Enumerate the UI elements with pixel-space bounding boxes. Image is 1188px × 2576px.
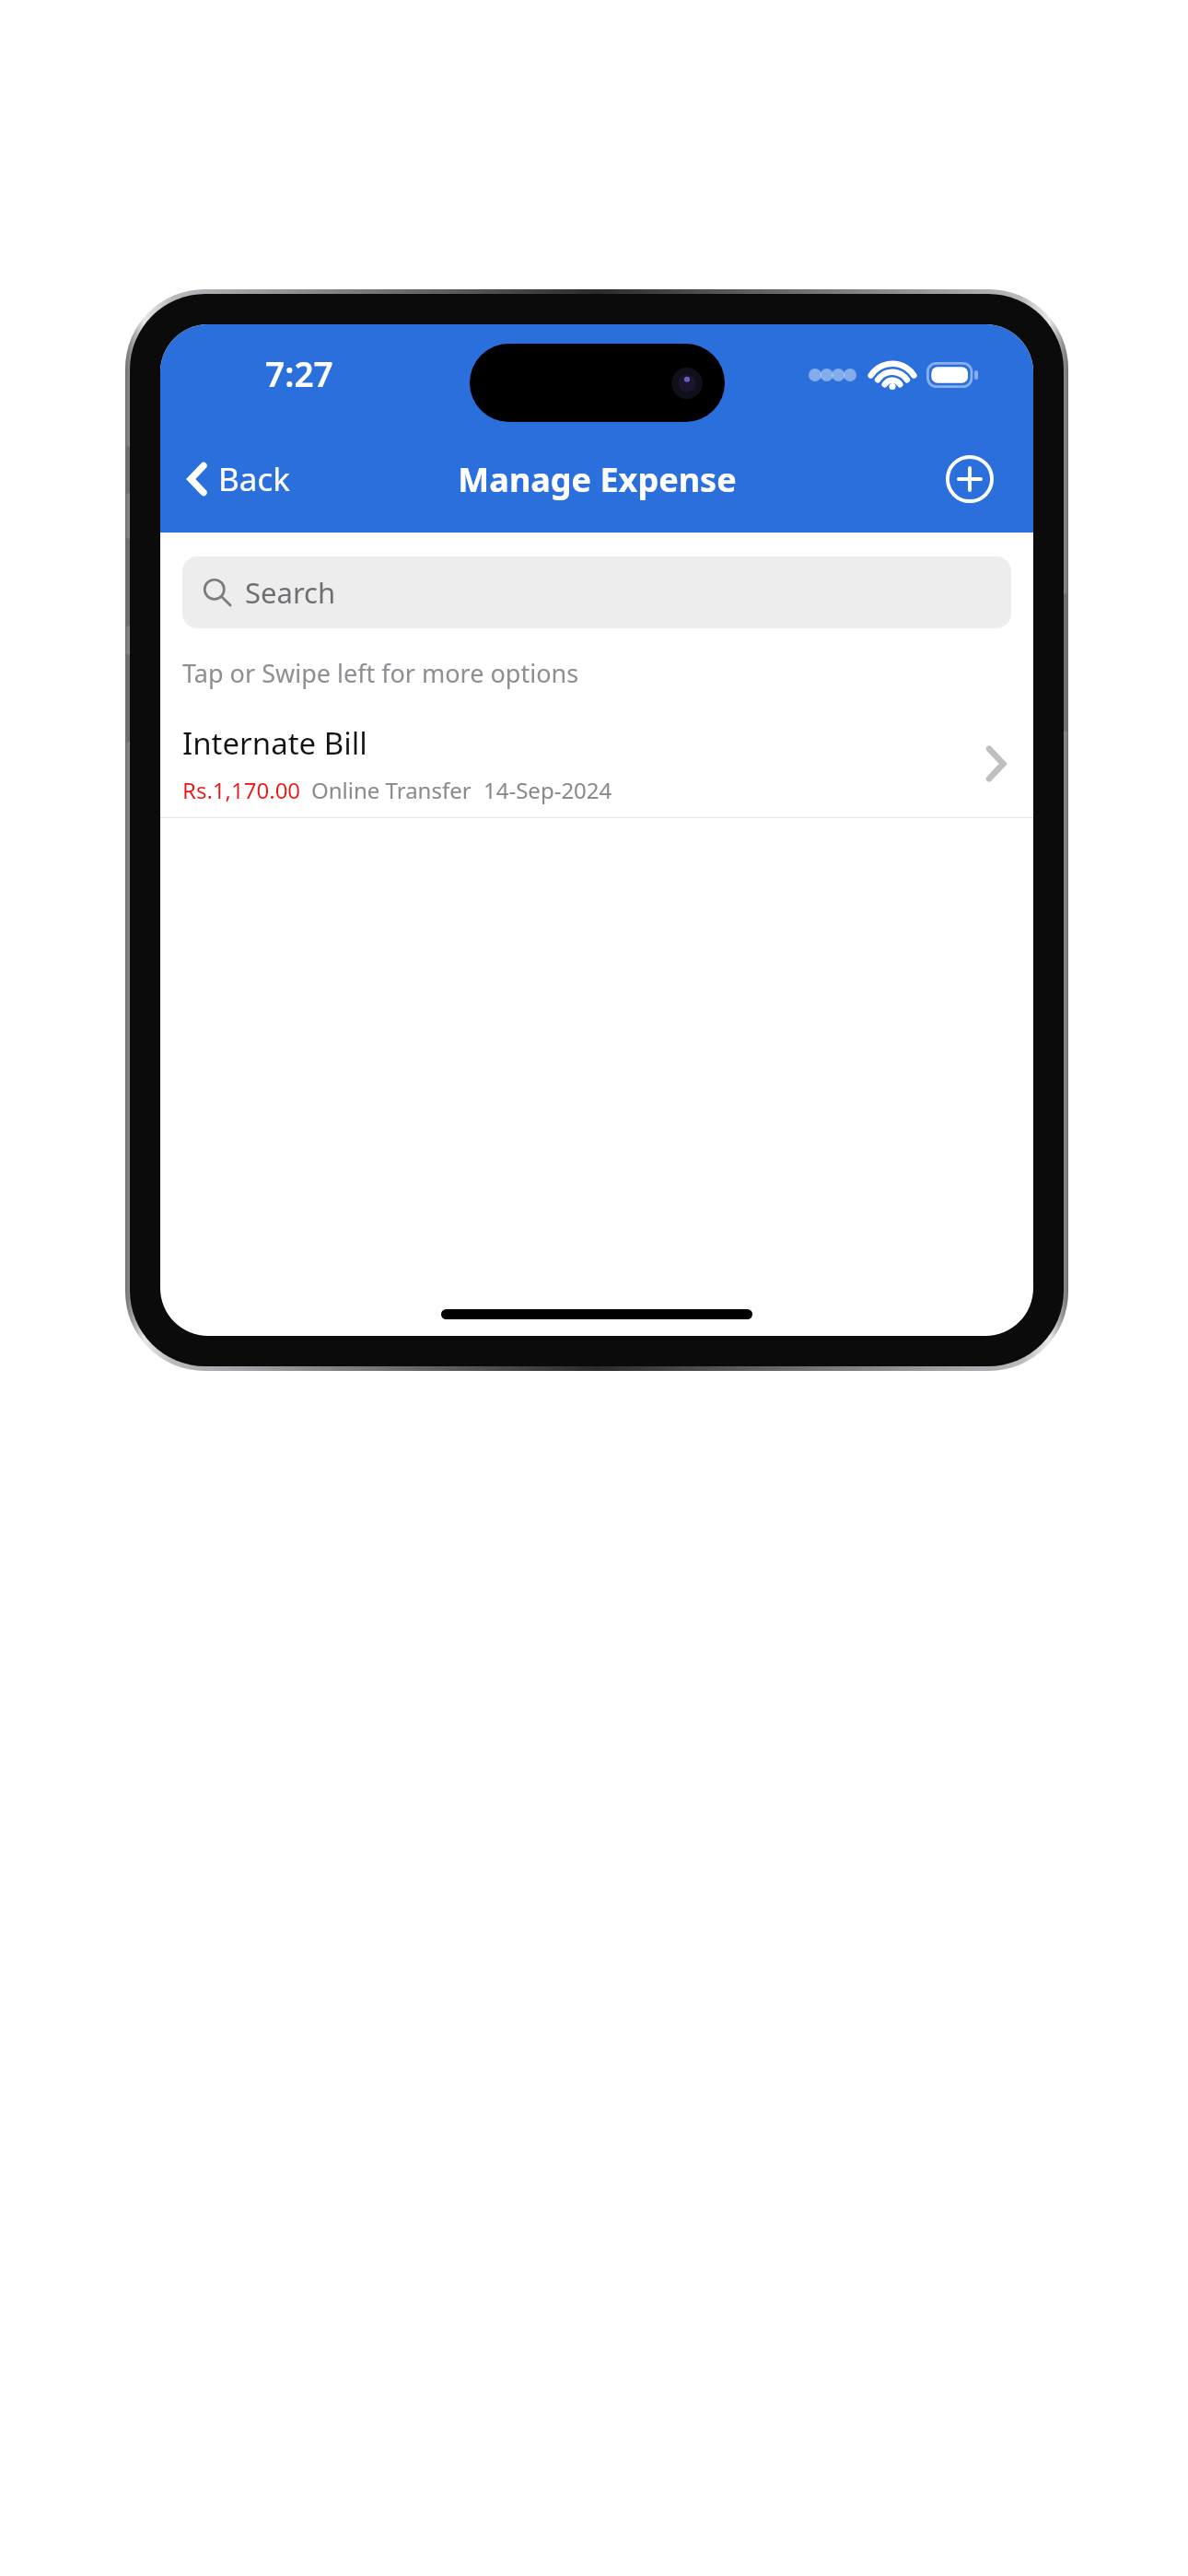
button[interactable]: Internate Bill <box>160 710 1033 817</box>
button[interactable]: Add expense <box>943 452 996 506</box>
staticText: Tap or Swipe left for more options <box>182 656 579 690</box>
staticText: Back <box>218 457 290 501</box>
staticText: 7:27 <box>265 350 333 396</box>
staticText: Search <box>245 573 336 612</box>
button[interactable]: Back <box>177 450 299 509</box>
staticText: Online Transfer <box>311 775 472 805</box>
button[interactable]: Search <box>182 556 1011 628</box>
staticText: Manage Expense <box>458 457 737 502</box>
staticText: Rs.1,170.00 <box>182 775 301 805</box>
staticText: Internate Bill <box>182 722 367 764</box>
staticText: 14-Sep-2024 <box>483 775 612 805</box>
